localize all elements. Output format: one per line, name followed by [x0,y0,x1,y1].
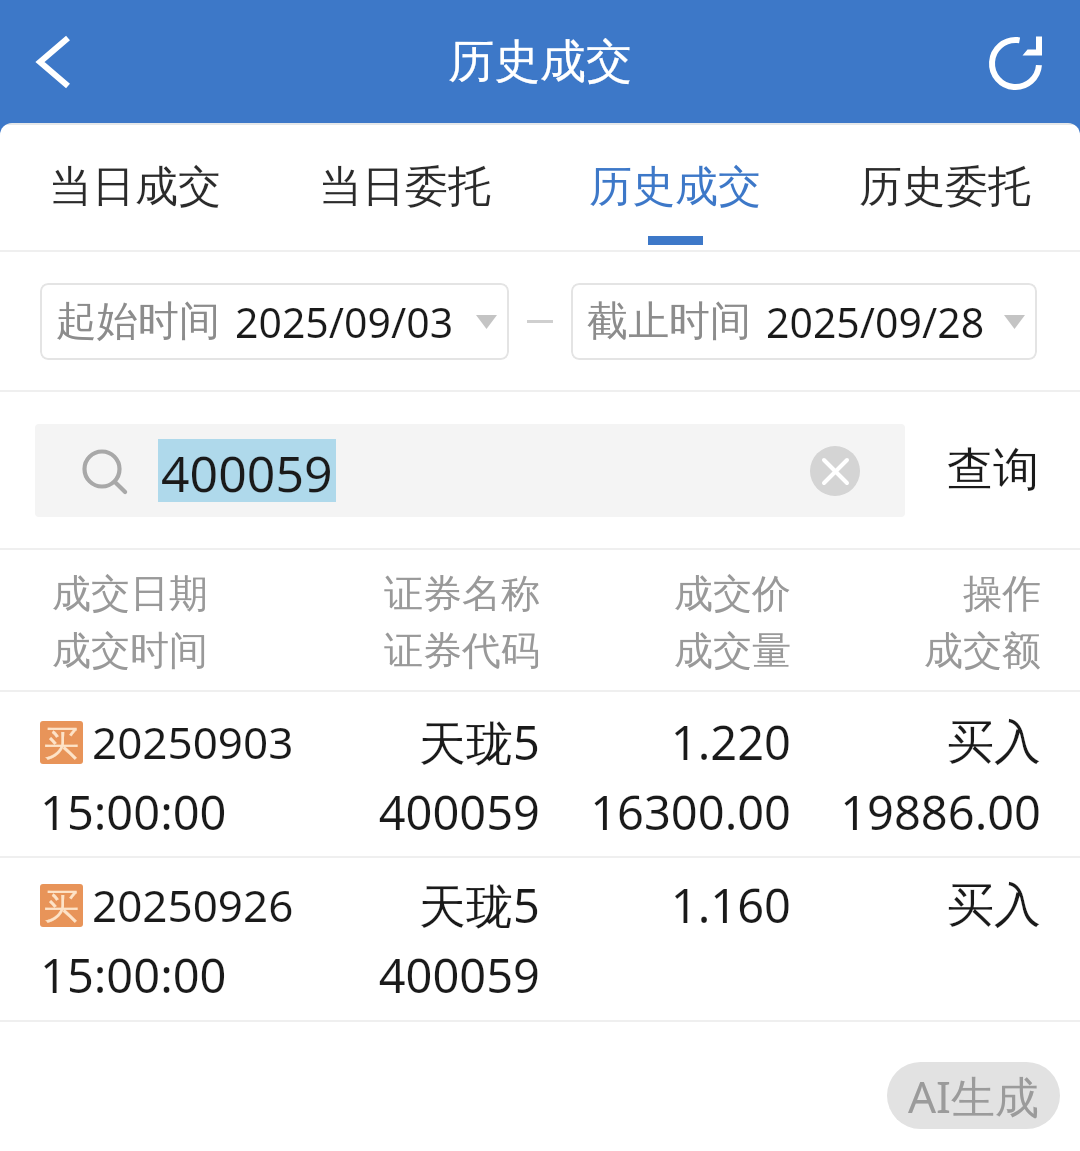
staticText: 成交额 [924,626,1041,675]
button[interactable]: Refresh [975,22,1055,102]
button[interactable]: AI生成 [887,1062,1060,1129]
staticText: 15:00:00 [40,943,227,1007]
staticText: 2025/09/28 [766,294,985,350]
staticText: 16300.00 [590,780,791,844]
staticText: 1.160 [670,873,791,937]
staticText: 买入 [947,713,1041,772]
button[interactable]: 查询 [905,392,1080,548]
staticText: 400059 [161,439,333,502]
staticText: 20250903 [92,712,294,772]
staticText: 起始时间 [56,296,220,348]
staticText: 15:00:00 [40,780,227,844]
button[interactable]: 400059 [35,424,905,517]
staticText: 买 [44,884,79,927]
button[interactable]: 当日成交 [0,123,270,250]
staticText: 1.220 [670,710,791,774]
staticText: 2025/09/03 [235,294,454,350]
staticText: 当日委托 [319,160,491,214]
button[interactable]: 当日委托 [270,123,540,250]
staticText: 19886.00 [840,780,1041,844]
staticText: 证券名称 [384,569,540,618]
staticText: 成交量 [674,626,791,675]
button[interactable]: Clear [810,446,860,496]
staticText: 证券代码 [384,626,540,675]
staticText: 买 [44,721,79,764]
button[interactable]: 起始时间 [40,283,509,360]
staticText: 400059 [378,943,540,1007]
button[interactable]: 历史委托 [810,123,1080,250]
button[interactable]: 买 [0,858,1080,1020]
staticText: 成交日期 [52,569,208,618]
staticText: 20250926 [92,875,294,935]
staticText: 历史成交 [448,33,632,91]
staticText: 天珑5 [419,873,540,937]
staticText: 400059 [378,780,540,844]
staticText: 查询 [947,441,1039,499]
staticText: 买入 [947,876,1041,935]
staticText: 历史成交 [589,160,761,214]
button[interactable]: 历史成交 [540,123,810,250]
button[interactable]: 截止时间 [571,283,1037,360]
button[interactable]: Back [11,22,91,102]
staticText: 截止时间 [587,296,751,348]
staticText: 成交价 [674,569,791,618]
staticText: 操作 [963,569,1041,618]
staticText: AI生成 [908,1066,1040,1126]
staticText: 历史委托 [859,160,1031,214]
staticText: 天珑5 [419,710,540,774]
staticText: 当日成交 [49,160,221,214]
button[interactable]: 买 [0,692,1080,856]
staticText: 成交时间 [52,626,208,675]
